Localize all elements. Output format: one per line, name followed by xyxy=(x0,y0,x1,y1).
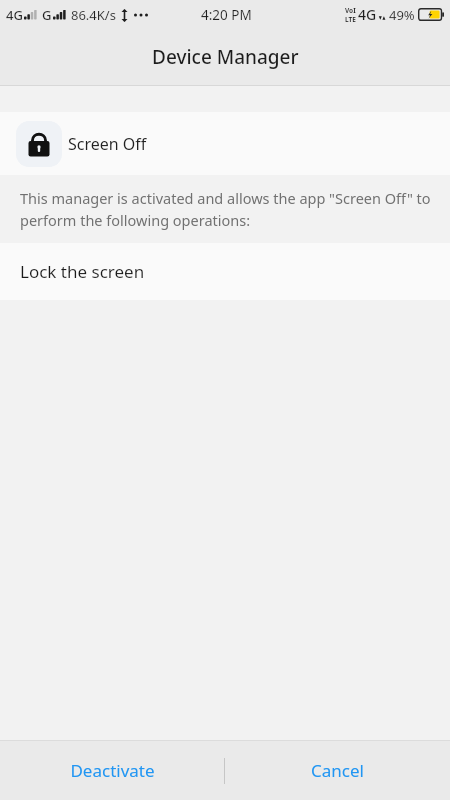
other: Screen Off app icon xyxy=(16,121,62,167)
staticText: Deactivate xyxy=(70,759,155,782)
staticText: LTE xyxy=(345,15,356,24)
staticText: 86.4K/s xyxy=(71,6,116,24)
staticText: 4:20 PM xyxy=(201,6,252,24)
staticText: 49% xyxy=(389,6,415,24)
staticText: 4G xyxy=(358,5,377,24)
staticText: 4G xyxy=(6,6,23,24)
button[interactable]: Cancel xyxy=(225,741,450,800)
staticText: Cancel xyxy=(311,759,364,782)
button[interactable]: Screen Off app icon xyxy=(0,112,450,175)
staticText: Device Manager xyxy=(152,44,299,70)
button[interactable]: Lock the screen xyxy=(0,243,450,300)
button[interactable]: Deactivate xyxy=(0,741,224,800)
staticText: Screen Off xyxy=(68,133,147,155)
staticText: Lock the screen xyxy=(20,260,145,283)
staticText: G xyxy=(42,6,52,24)
staticText: VoI xyxy=(345,6,356,15)
staticText: This manager is activated and allows the… xyxy=(20,188,448,230)
